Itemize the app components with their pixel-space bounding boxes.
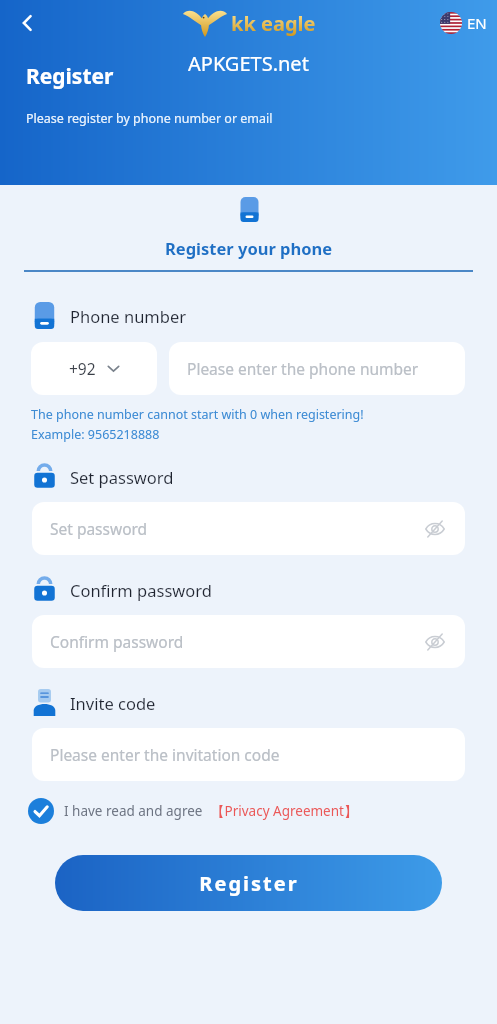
staticText: The phone number cannot start with 0 whe… (31, 406, 364, 423)
staticText: Phone number (70, 305, 187, 327)
staticText: EN (467, 13, 487, 33)
staticText: Confirm password (50, 631, 184, 652)
button[interactable]: Set password (32, 502, 465, 555)
staticText: Confirm password (70, 579, 212, 601)
button[interactable]: EN (440, 12, 487, 34)
staticText: Set password (50, 518, 148, 539)
staticText: Please enter the invitation code (50, 744, 280, 765)
button[interactable]: Back (6, 2, 48, 44)
button[interactable]: I have read and agree (28, 798, 477, 824)
staticText: 【Privacy Agreement】 (211, 802, 358, 820)
staticText: kk eagle (231, 10, 316, 37)
staticText: APKGETS.net (188, 50, 309, 77)
button[interactable]: Register your phone (165, 197, 333, 270)
staticText: +92 (69, 358, 96, 379)
staticText: I have read and agree (64, 802, 203, 820)
button[interactable]: +92 (31, 342, 157, 395)
button[interactable]: Toggle password visibility (419, 626, 451, 658)
staticText: Register (199, 870, 299, 897)
staticText: Invite code (70, 692, 156, 714)
staticText: Register (26, 62, 114, 91)
staticText: Set password (70, 466, 174, 488)
staticText: Please register by phone number or email (26, 110, 273, 127)
button[interactable]: Please enter the invitation code (32, 728, 465, 781)
button[interactable]: Please enter the phone number (169, 342, 465, 395)
staticText: Register your phone (165, 237, 333, 259)
button[interactable]: Register (55, 855, 442, 911)
staticText: Please enter the phone number (187, 358, 419, 379)
button[interactable]: Toggle password visibility (419, 513, 451, 545)
button[interactable]: Confirm password (32, 615, 465, 668)
staticText: Example: 9565218888 (31, 426, 160, 443)
